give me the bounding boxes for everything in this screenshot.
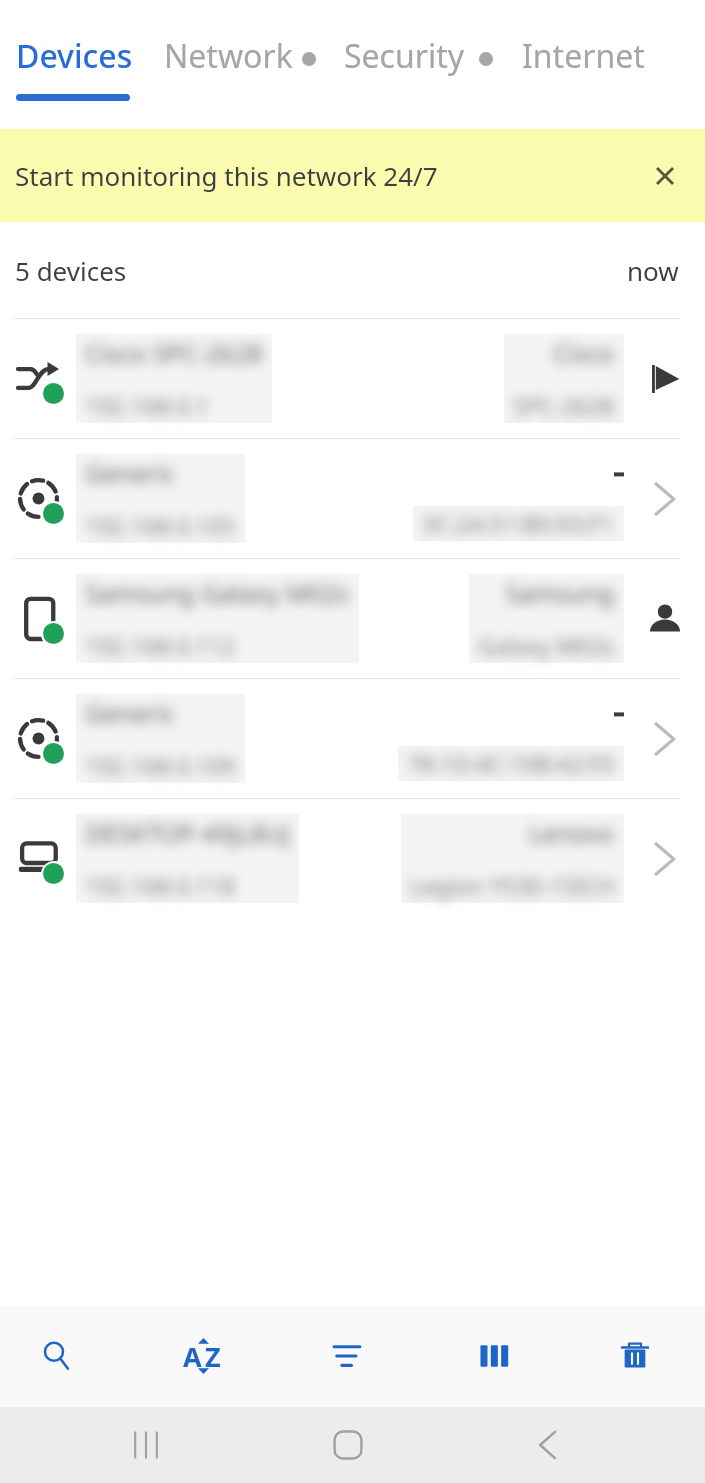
button[interactable]: Security — [344, 0, 465, 78]
button[interactable]: Open details — [646, 720, 684, 758]
staticText: SPC-2628 — [513, 390, 615, 421]
button[interactable]: Internet — [522, 0, 645, 78]
button[interactable]: DESKTOP-49jL8Uj — [0, 799, 705, 918]
staticText: 192.168.0.118 — [85, 870, 236, 901]
staticText: Samsung Galaxy M02s — [85, 576, 350, 610]
button[interactable]: Delete — [589, 1305, 681, 1407]
staticText: now — [627, 253, 679, 288]
staticText: Samsung — [505, 576, 615, 610]
staticText: Start monitoring this network 24/7 — [15, 158, 438, 193]
staticText: Galaxy M02s — [478, 630, 615, 661]
staticText: 3C:2A:51:B0:93:F1 — [422, 508, 615, 539]
button[interactable]: Recents — [108, 1407, 184, 1483]
staticText: Security — [344, 34, 465, 78]
button[interactable]: Network — [164, 0, 293, 78]
staticText: Generic — [85, 456, 176, 490]
staticText: Legion Y530-15ICH — [410, 870, 615, 901]
staticText: Cisco SPC-2628 — [85, 336, 263, 370]
button[interactable]: Generic — [0, 679, 705, 798]
staticText: Internet — [522, 34, 645, 78]
button[interactable]: Dismiss — [645, 156, 685, 196]
button[interactable]: Flag device — [648, 362, 682, 396]
staticText: Cisco — [553, 336, 615, 370]
staticText: 192.168.0.109 — [85, 750, 236, 781]
button[interactable]: Cisco SPC-2628 — [0, 319, 705, 438]
button[interactable]: Open details — [646, 480, 684, 518]
staticText: Lenovo — [529, 816, 615, 850]
staticText: Generic — [85, 696, 176, 730]
button[interactable]: Filter — [301, 1305, 393, 1407]
staticText: 192.168.0.1 — [85, 390, 209, 421]
staticText: Devices — [16, 34, 133, 78]
button[interactable]: Open details — [646, 840, 684, 878]
staticText: 5 devices — [15, 253, 127, 288]
button[interactable]: Start monitoring this network 24/7 — [0, 129, 705, 222]
staticText: 192.168.0.105 — [85, 510, 236, 541]
button[interactable]: Samsung Galaxy M02s — [0, 559, 705, 678]
button[interactable]: Generic — [0, 439, 705, 558]
staticText: Z — [205, 1338, 221, 1375]
staticText: 192.168.0.112 — [85, 630, 236, 661]
button[interactable]: Search — [11, 1305, 103, 1407]
button[interactable]: Home — [310, 1407, 386, 1483]
button[interactable]: Devices — [16, 0, 133, 78]
staticText: Network — [164, 34, 293, 78]
button[interactable]: Back — [510, 1407, 586, 1483]
staticText: DESKTOP-49jL8Uj — [85, 816, 290, 850]
button[interactable]: Sort A to Z — [156, 1305, 248, 1407]
button[interactable]: Columns — [446, 1305, 538, 1407]
staticText: A — [183, 1338, 202, 1375]
staticText: 78:1D:4C:10B:42:F0 — [407, 748, 615, 779]
button[interactable]: Device owner — [650, 604, 680, 634]
